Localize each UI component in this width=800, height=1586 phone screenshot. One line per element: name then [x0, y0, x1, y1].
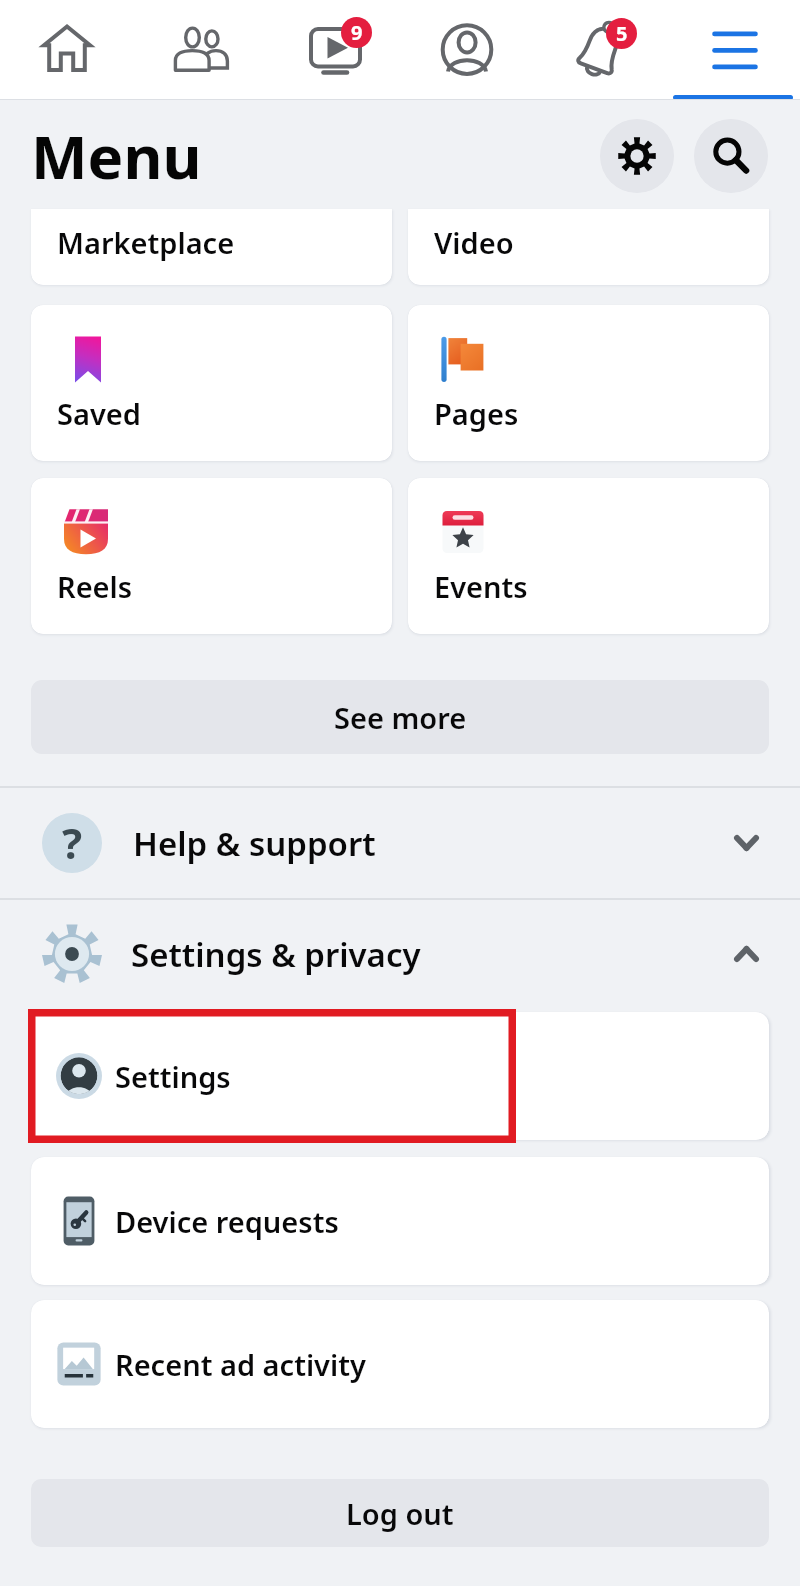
button[interactable]: Menu: [667, 0, 800, 100]
button[interactable]: Reels: [31, 478, 392, 634]
button[interactable]: Friends: [134, 0, 268, 100]
staticText: Marketplace: [57, 223, 235, 262]
staticText: Settings & privacy: [131, 932, 421, 977]
staticText: See more: [334, 698, 467, 737]
button[interactable]: Settings: [600, 119, 674, 193]
button[interactable]: ?: [0, 787, 800, 899]
staticText: 9: [351, 19, 363, 46]
other: Collapse: [734, 946, 759, 962]
staticText: Recent ad activity: [115, 1345, 366, 1384]
staticText: Pages: [434, 394, 519, 433]
staticText: 5: [616, 20, 628, 47]
staticText: Events: [434, 567, 528, 606]
button[interactable]: Video: [408, 209, 769, 285]
other: Expand: [734, 835, 759, 851]
staticText: Settings: [115, 1057, 231, 1096]
staticText: Help & support: [133, 821, 376, 866]
staticText: Menu: [31, 115, 202, 197]
button[interactable]: Home: [0, 0, 134, 100]
button[interactable]: Log out: [31, 1479, 769, 1547]
button[interactable]: Settings: [31, 1012, 769, 1140]
staticText: Reels: [57, 567, 133, 606]
button[interactable]: Search: [694, 119, 768, 193]
button[interactable]: Settings & privacy: [0, 899, 800, 1009]
button[interactable]: Device requests: [31, 1157, 769, 1285]
button[interactable]: Video: [268, 0, 401, 100]
staticText: Saved: [57, 394, 141, 433]
button[interactable]: See more: [31, 680, 769, 754]
staticText: Device requests: [115, 1202, 339, 1241]
button[interactable]: Marketplace: [31, 209, 392, 285]
staticText: ?: [62, 814, 83, 871]
staticText: Video: [434, 223, 514, 262]
button[interactable]: Events: [408, 478, 769, 634]
button[interactable]: Saved: [31, 305, 392, 461]
button[interactable]: Notifications: [534, 0, 667, 100]
staticText: Log out: [346, 1494, 454, 1533]
button[interactable]: Pages: [408, 305, 769, 461]
button[interactable]: Profile: [401, 0, 534, 100]
button[interactable]: Recent ad activity: [31, 1300, 769, 1428]
